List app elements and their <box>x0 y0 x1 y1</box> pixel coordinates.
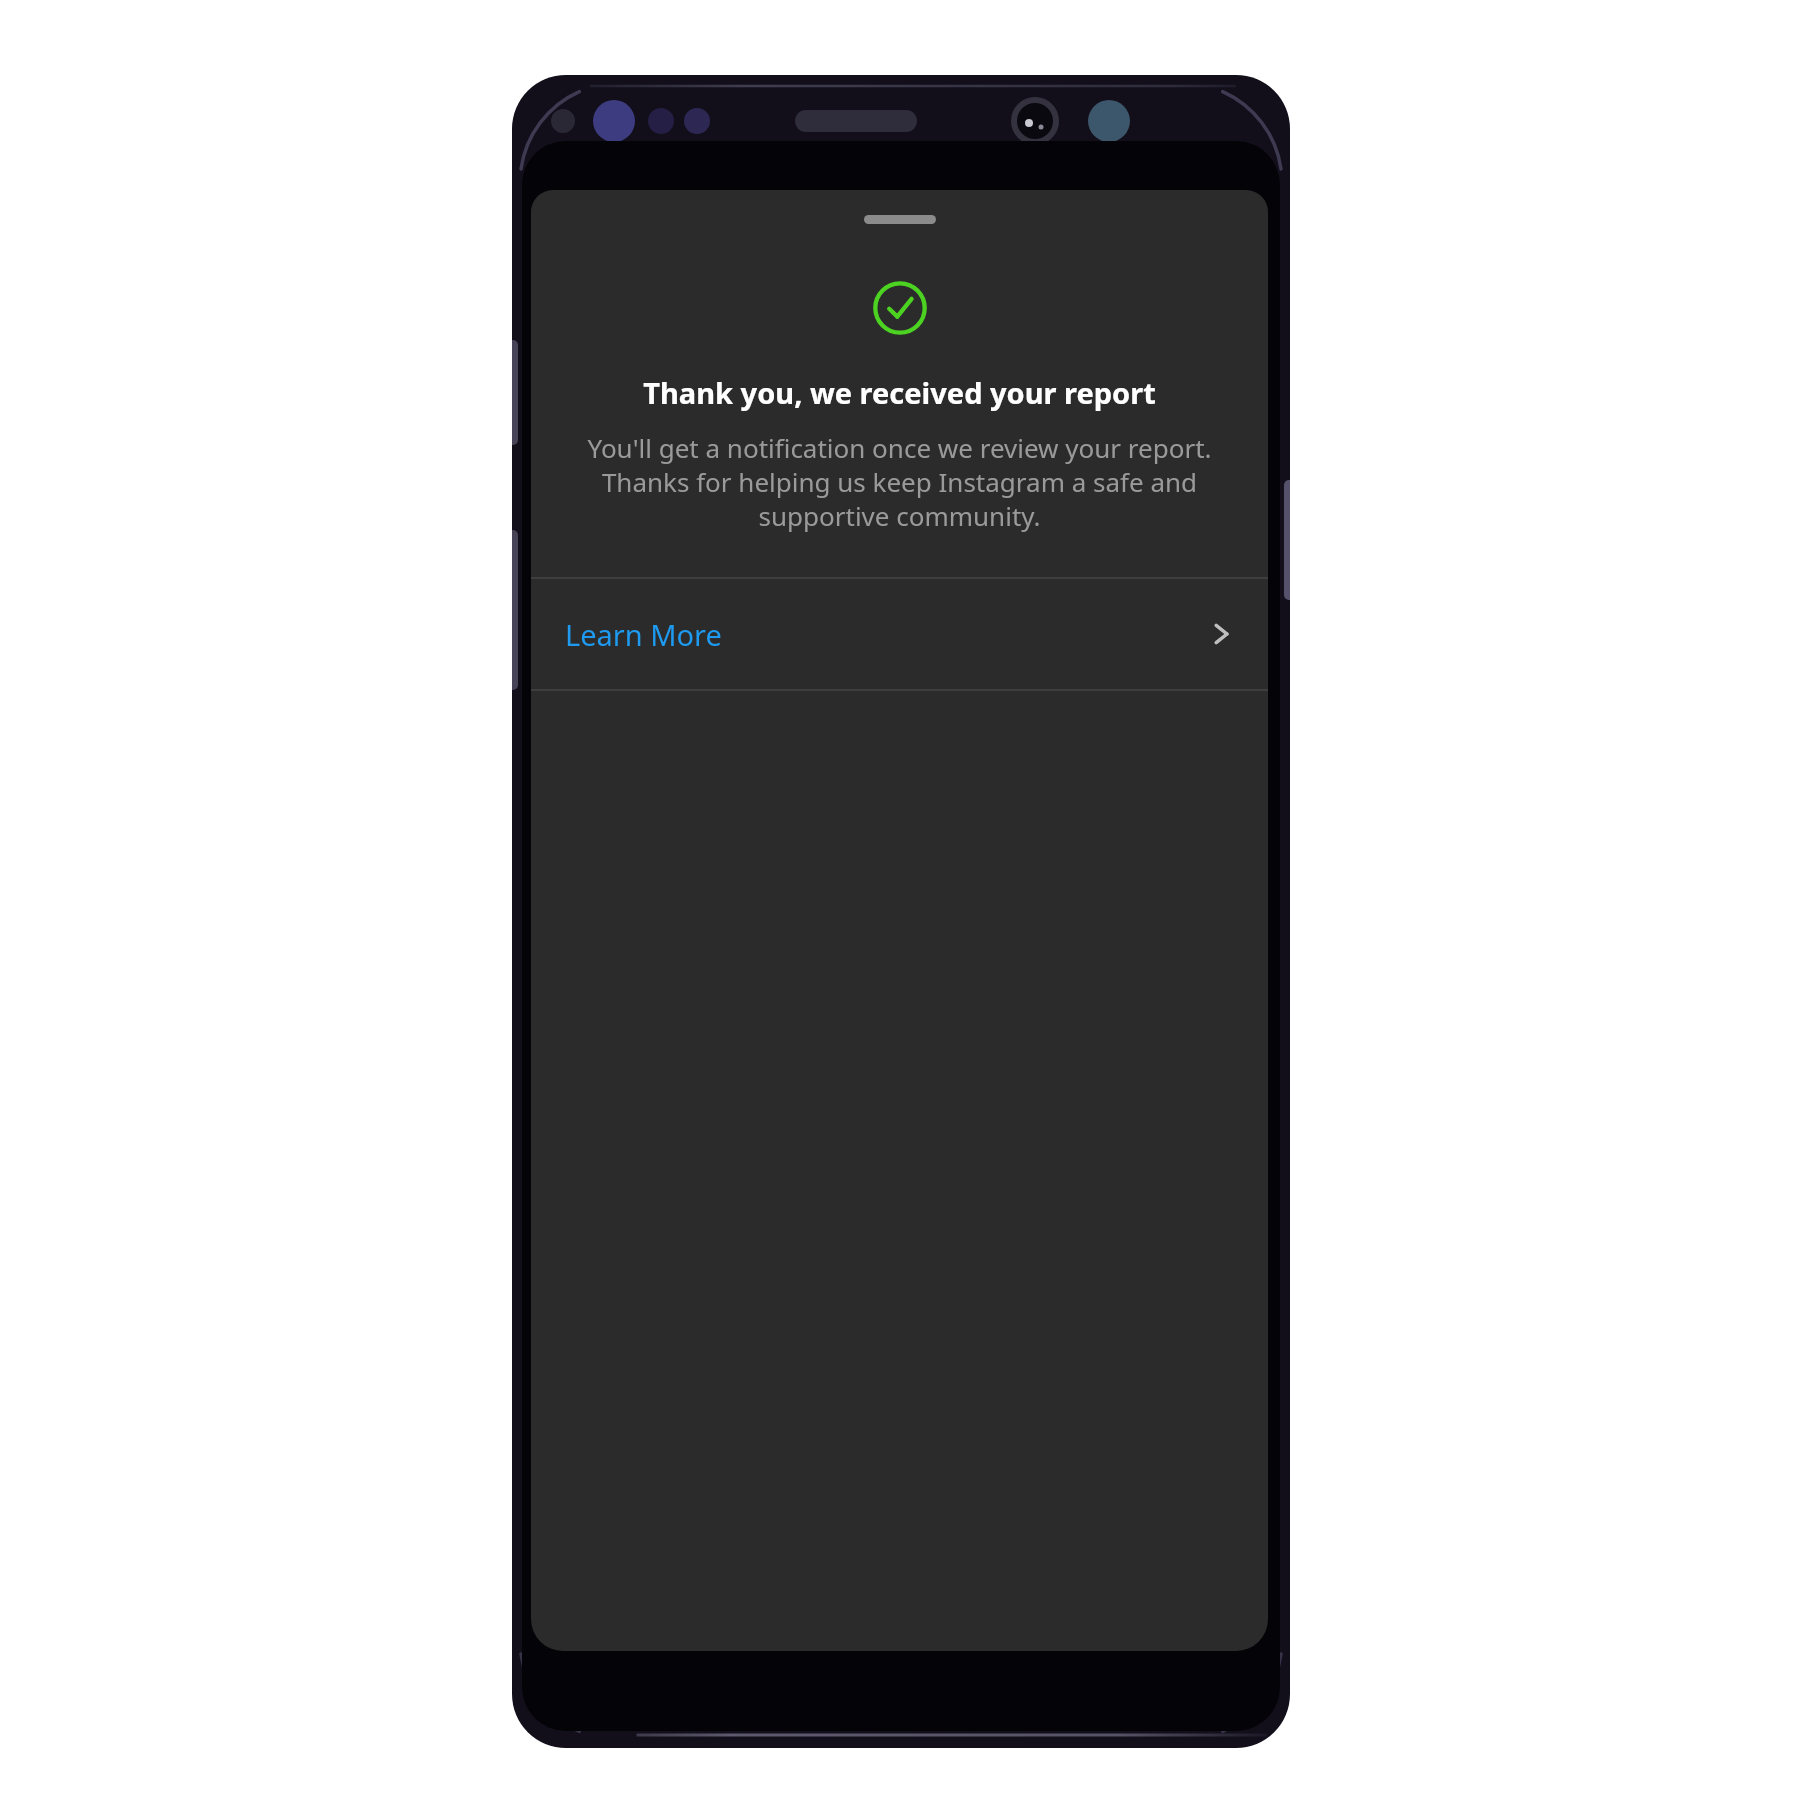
button[interactable]: Learn More <box>531 579 1268 689</box>
staticText: Learn More <box>565 615 722 654</box>
staticText: Thank you, we received your report <box>643 373 1156 412</box>
other: Learn More <box>1206 619 1236 649</box>
staticText: You'll get a notification once we review… <box>561 430 1238 533</box>
